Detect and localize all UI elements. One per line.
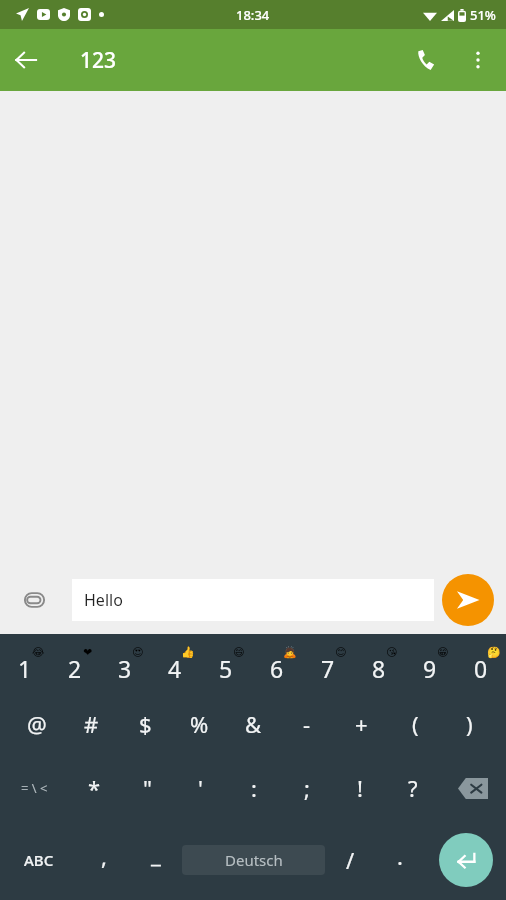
staticText: & [245, 709, 262, 739]
button[interactable]: # [64, 692, 118, 756]
staticText: ❤ [83, 646, 93, 659]
button[interactable]: More options [454, 36, 502, 84]
staticText: 4 [168, 653, 182, 684]
button[interactable]: 0 [455, 634, 506, 692]
staticText: 1 [18, 653, 32, 684]
staticText: ' [198, 773, 203, 803]
button[interactable]: 2 [50, 634, 100, 692]
button[interactable]: 9 [404, 634, 455, 692]
button[interactable]: 3 [100, 634, 150, 692]
staticText: * [88, 773, 101, 803]
staticText: 123 [80, 46, 117, 75]
button[interactable]: @ [10, 692, 64, 756]
button[interactable]: . [375, 820, 425, 900]
button[interactable]: ; [280, 756, 333, 820]
button[interactable]: 1 [0, 634, 50, 692]
button[interactable]: Back [0, 34, 52, 86]
staticText: " [143, 773, 152, 803]
button[interactable]: Send [442, 574, 494, 626]
staticText: 🤔 [487, 646, 501, 659]
staticText: 2 [68, 653, 82, 684]
staticText: 😍 [132, 646, 144, 659]
staticText: : [251, 773, 257, 803]
staticText: . [397, 841, 403, 871]
button[interactable]: ' [174, 756, 227, 820]
staticText: 6 [270, 653, 284, 684]
staticText: ; [304, 773, 310, 803]
staticText: # [84, 709, 99, 739]
staticText: 7 [321, 653, 335, 684]
staticText: $ [139, 709, 152, 739]
staticText: @ [27, 709, 47, 739]
button[interactable]: ABC [0, 820, 78, 900]
staticText: Hello [84, 589, 123, 611]
button[interactable]: = \ < [0, 756, 68, 820]
button[interactable]: - [280, 692, 334, 756]
button[interactable]: _ [130, 820, 182, 900]
staticText: 😁 [437, 646, 449, 659]
staticText: ) [466, 709, 473, 739]
staticText: 🙇 [283, 646, 297, 659]
staticText: 3 [118, 653, 132, 684]
staticText: 😘 [386, 646, 398, 659]
staticText: 😂 [32, 646, 45, 659]
staticText: Deutsch [225, 850, 283, 870]
button[interactable]: : [227, 756, 280, 820]
button[interactable]: % [172, 692, 226, 756]
button[interactable]: 5 [200, 634, 251, 692]
staticText: / [346, 845, 355, 875]
staticText: 5 [219, 653, 233, 684]
staticText: 9 [423, 653, 437, 684]
button[interactable]: Deutsch [182, 845, 325, 875]
staticText: 51% [470, 6, 496, 24]
staticText: + [355, 709, 368, 739]
staticText: - [303, 709, 311, 739]
staticText: ? [408, 773, 418, 803]
button[interactable]: Attach [12, 578, 56, 622]
staticText: 18:34 [236, 6, 270, 24]
button[interactable]: * [68, 756, 121, 820]
staticText: 8 [372, 653, 386, 684]
button[interactable]: , [78, 820, 130, 900]
button[interactable]: ? [386, 756, 439, 820]
button[interactable]: 8 [353, 634, 404, 692]
staticText: 👍 [181, 646, 195, 659]
staticText: ABC [24, 850, 54, 870]
staticText: % [190, 709, 209, 739]
button[interactable]: Call [402, 34, 454, 86]
button[interactable]: 7 [302, 634, 353, 692]
staticText: , [101, 841, 107, 871]
button[interactable]: 6 [251, 634, 302, 692]
button[interactable]: / [325, 820, 375, 900]
button[interactable]: ( [388, 692, 442, 756]
staticText: ! [357, 773, 363, 803]
staticText: 😊 [335, 646, 347, 659]
staticText: 😄 [233, 646, 245, 659]
button[interactable]: + [334, 692, 388, 756]
button[interactable]: ! [333, 756, 386, 820]
button[interactable]: Hello [72, 579, 434, 621]
staticText: 0 [474, 653, 488, 684]
button[interactable]: ) [442, 692, 496, 756]
button[interactable]: Enter [439, 833, 493, 887]
staticText: ( [412, 709, 419, 739]
button[interactable]: $ [118, 692, 172, 756]
staticText: = \ < [21, 779, 48, 797]
staticText: _ [151, 839, 161, 869]
button[interactable]: " [121, 756, 174, 820]
button[interactable]: 4 [150, 634, 200, 692]
button[interactable]: & [226, 692, 280, 756]
button[interactable]: Backspace [439, 756, 506, 820]
